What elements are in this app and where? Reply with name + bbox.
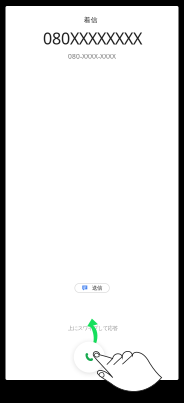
button[interactable]: Answer call — [71, 339, 107, 375]
staticText: 着信 — [84, 16, 98, 24]
staticText: 080-XXXX-XXXX — [68, 52, 116, 61]
staticText: 上にスワイプして応答 — [68, 325, 118, 331]
staticText: 送信 — [92, 285, 102, 291]
staticText: 080XXXXXXXX — [43, 28, 142, 49]
button[interactable]: 送信 — [75, 283, 109, 292]
